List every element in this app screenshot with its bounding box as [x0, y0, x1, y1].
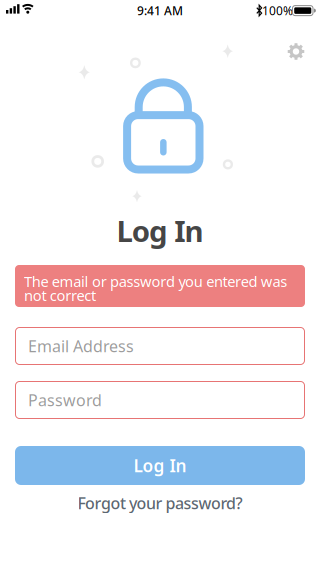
staticText: Log In	[116, 211, 203, 250]
staticText: 100%	[262, 2, 293, 18]
staticText: Log In	[133, 454, 186, 477]
staticText: Email Address	[28, 335, 134, 357]
staticText: Forgot your password?	[77, 492, 242, 514]
staticText: The email or password you entered was	[24, 272, 287, 291]
button[interactable]: Password	[15, 381, 305, 419]
button[interactable]: Log In	[15, 446, 305, 485]
staticText: Password	[28, 389, 102, 411]
button[interactable]: Forgot your password?	[77, 492, 242, 514]
staticText: 9:41 AM	[137, 2, 183, 18]
staticText: not correct	[24, 286, 96, 305]
button[interactable]: Settings	[282, 37, 310, 65]
button[interactable]: Email Address	[15, 327, 305, 365]
